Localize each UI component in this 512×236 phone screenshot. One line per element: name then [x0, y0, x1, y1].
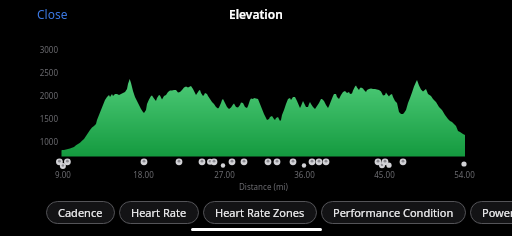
- staticText: 1500: [39, 113, 58, 124]
- staticText: 2500: [39, 67, 58, 78]
- staticText: 3000: [39, 44, 58, 55]
- staticText: Elevation: [229, 6, 283, 22]
- staticText: 45.00: [374, 169, 395, 180]
- staticText: 9.00: [55, 169, 71, 180]
- staticText: Power: [482, 205, 512, 220]
- staticText: 54.00: [454, 169, 475, 180]
- staticText: 18.00: [133, 169, 154, 180]
- staticText: 1000: [39, 136, 58, 147]
- staticText: Performance Condition: [333, 205, 454, 220]
- staticText: 27.00: [214, 169, 235, 180]
- button[interactable]: Heart Rate: [119, 201, 199, 224]
- button[interactable]: Performance Condition: [321, 201, 466, 224]
- button[interactable]: Heart Rate Zones: [203, 201, 317, 224]
- staticText: Heart Rate Zones: [215, 205, 305, 220]
- button[interactable]: Cadence: [46, 201, 115, 224]
- staticText: Heart Rate: [131, 205, 187, 220]
- staticText: 2000: [39, 90, 58, 101]
- staticText: Close: [37, 6, 68, 22]
- button[interactable]: Power: [470, 201, 512, 224]
- staticText: 36.00: [294, 169, 315, 180]
- button[interactable]: Close: [31, 2, 74, 26]
- staticText: Distance (mi): [239, 181, 288, 192]
- staticText: Cadence: [58, 205, 103, 220]
